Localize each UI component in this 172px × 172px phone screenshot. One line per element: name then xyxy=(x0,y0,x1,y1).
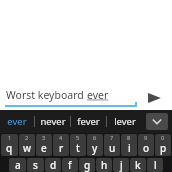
button[interactable]: 4 xyxy=(53,134,69,156)
staticText: g xyxy=(84,158,91,172)
staticText: s xyxy=(33,158,38,172)
button[interactable]: l xyxy=(147,158,163,172)
button[interactable]: j xyxy=(113,158,129,172)
staticText: d xyxy=(50,158,57,172)
button[interactable]: 7 xyxy=(104,134,120,156)
staticText: h xyxy=(101,158,108,172)
staticText: t xyxy=(76,141,80,155)
button[interactable]: k xyxy=(130,158,146,172)
staticText: y xyxy=(92,141,98,155)
staticText: w xyxy=(23,141,32,155)
button[interactable]: Worst keyboard xyxy=(6,88,138,106)
button[interactable]: More suggestions xyxy=(146,113,168,130)
staticText: r xyxy=(59,141,64,155)
staticText: u xyxy=(109,141,116,155)
button[interactable]: h xyxy=(96,158,112,172)
staticText: 2 xyxy=(25,134,29,141)
button[interactable]: d xyxy=(45,158,61,172)
staticText: 3 xyxy=(42,134,46,141)
staticText: 7 xyxy=(110,134,114,141)
button[interactable]: 3 xyxy=(36,134,52,156)
staticText: 4 xyxy=(59,134,63,141)
button[interactable]: 5 xyxy=(70,134,86,156)
staticText: 0 xyxy=(161,134,165,141)
button[interactable]: 8 xyxy=(121,134,137,156)
staticText: e xyxy=(41,141,47,155)
staticText: lever xyxy=(114,115,136,128)
button[interactable]: g xyxy=(79,158,95,172)
staticText: l xyxy=(154,158,157,172)
staticText: ever xyxy=(87,88,109,102)
staticText: fever xyxy=(77,115,100,128)
staticText: j xyxy=(120,158,123,172)
staticText: never xyxy=(40,115,66,128)
staticText: f xyxy=(68,158,72,172)
staticText: 9 xyxy=(144,134,148,141)
staticText: q xyxy=(6,141,13,155)
button[interactable]: a xyxy=(9,158,26,172)
staticText: k xyxy=(135,158,141,172)
staticText: i xyxy=(128,141,131,155)
staticText: a xyxy=(15,158,21,172)
staticText: ever xyxy=(7,115,27,128)
button[interactable]: 6 xyxy=(87,134,103,156)
button[interactable]: 0 xyxy=(155,134,171,156)
button[interactable]: ever xyxy=(0,110,34,133)
staticText: Worst keyboard xyxy=(6,88,87,102)
button[interactable]: f xyxy=(62,158,78,172)
button[interactable]: s xyxy=(27,158,44,172)
button[interactable]: never xyxy=(35,110,70,133)
button[interactable]: fever xyxy=(71,110,106,133)
staticText: 6 xyxy=(93,134,97,141)
staticText: 8 xyxy=(127,134,131,141)
button[interactable]: lever xyxy=(107,110,142,133)
button[interactable]: 1 xyxy=(1,134,18,156)
button[interactable]: 9 xyxy=(138,134,154,156)
staticText: o xyxy=(143,141,150,155)
button[interactable]: Send xyxy=(143,87,165,109)
staticText: 1 xyxy=(8,134,12,141)
staticText: 5 xyxy=(76,134,80,141)
staticText: p xyxy=(160,141,167,155)
button[interactable]: 2 xyxy=(19,134,35,156)
